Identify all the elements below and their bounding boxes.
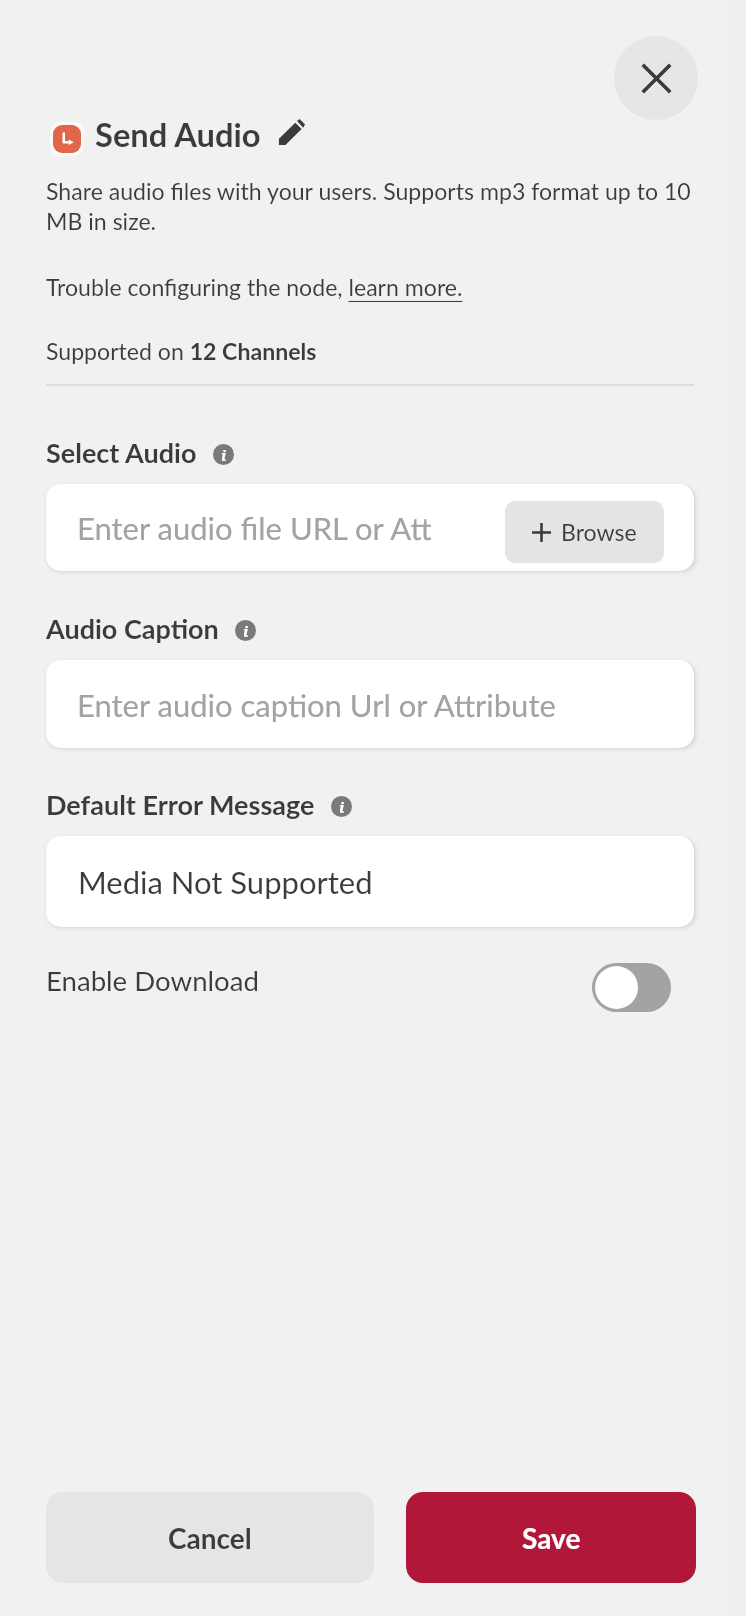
staticText: i xyxy=(339,797,345,817)
staticText: Enable Download xyxy=(46,964,259,997)
button[interactable]: Info about Audio Caption xyxy=(235,620,256,641)
staticText: Media Not Supported xyxy=(78,863,373,900)
staticText: Supported on 12 Channels xyxy=(46,337,317,365)
button[interactable]: Browse xyxy=(505,501,664,563)
staticText: Save xyxy=(522,1521,581,1555)
staticText: Enter audio caption Url or Attribute xyxy=(77,686,556,723)
button[interactable]: Info about Select Audio xyxy=(213,444,234,465)
staticText: i xyxy=(243,621,249,641)
staticText: Default Error Message xyxy=(46,788,315,820)
button[interactable]: Enable Download xyxy=(592,963,671,1012)
button[interactable]: Rename node xyxy=(278,119,305,146)
staticText: Enter audio file URL or Att xyxy=(77,509,432,546)
button[interactable]: Close xyxy=(614,36,698,120)
staticText: Audio Caption xyxy=(46,612,219,644)
button[interactable]: Save xyxy=(406,1492,696,1583)
staticText: Share audio files with your users. Suppo… xyxy=(46,177,698,235)
staticText: Send Audio xyxy=(95,115,261,154)
button[interactable]: Cancel xyxy=(46,1492,374,1583)
staticText: i xyxy=(221,445,227,465)
staticText: Trouble configuring the node, learn more… xyxy=(46,273,463,301)
button[interactable]: Info about Default Error Message xyxy=(331,796,352,817)
staticText: Cancel xyxy=(168,1521,252,1555)
staticText: Browse xyxy=(561,518,637,546)
staticText: Select Audio xyxy=(46,436,197,468)
